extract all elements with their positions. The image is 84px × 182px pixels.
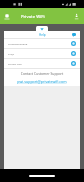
- staticText: FAQs: [8, 52, 14, 55]
- staticText: Troubleshooting: [8, 42, 28, 45]
- button[interactable]: Home: [29, 175, 55, 177]
- button[interactable]: Privacy Tips: [4, 59, 80, 68]
- staticText: Private WiFi: [21, 13, 45, 19]
- button[interactable]: Help: [4, 31, 80, 38]
- staticText: pwi.support@privatewifi.com: [4, 79, 80, 84]
- button[interactable]: Collapse panel: [36, 26, 48, 32]
- button[interactable]: pwi.support@privatewifi.com: [4, 77, 80, 85]
- button[interactable]: Troubleshooting: [4, 39, 80, 48]
- button[interactable]: VPN status: [72, 11, 82, 21]
- button[interactable]: FAQs: [4, 49, 80, 58]
- button[interactable]: Private WiFi logo: [4, 12, 13, 21]
- staticText: Contact Customer Support: [4, 71, 80, 76]
- staticText: Help: [39, 33, 46, 37]
- staticText: Privacy Tips: [8, 62, 22, 65]
